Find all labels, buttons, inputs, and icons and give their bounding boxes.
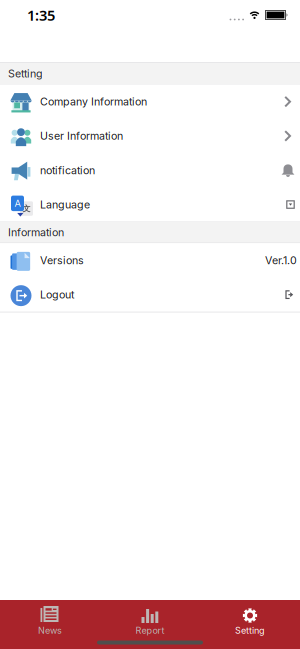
button[interactable]: User Information <box>0 119 300 153</box>
staticText: Company Information <box>40 95 147 108</box>
staticText: News <box>38 625 62 636</box>
staticText: 文 <box>22 204 30 213</box>
staticText: Logout <box>40 288 74 301</box>
staticText: User Information <box>40 129 123 142</box>
staticText: Language <box>40 198 90 211</box>
staticText: Report <box>135 625 164 636</box>
staticText: Ver.1.0 <box>265 254 297 267</box>
staticText: Setting <box>8 67 43 80</box>
staticText: 1:35 <box>27 5 55 25</box>
staticText: Versions <box>40 254 84 267</box>
button[interactable]: 文 <box>0 187 300 222</box>
button[interactable]: Company Information <box>0 84 300 119</box>
staticText: Setting <box>235 625 265 636</box>
button[interactable]: Logout <box>0 277 300 312</box>
button[interactable]: Report <box>100 605 200 636</box>
button[interactable]: Versions <box>0 243 300 277</box>
staticText: Information <box>8 226 64 239</box>
button[interactable]: News <box>0 605 100 636</box>
staticText: notification <box>40 164 95 177</box>
button[interactable]: Setting <box>200 605 300 636</box>
staticText: A <box>14 198 20 209</box>
button[interactable]: notification <box>0 153 300 187</box>
